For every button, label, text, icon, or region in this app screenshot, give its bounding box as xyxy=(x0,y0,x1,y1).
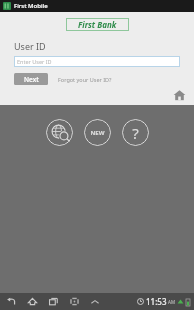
staticText: Enter User ID xyxy=(17,58,52,65)
button[interactable]: First Bank logo xyxy=(66,18,129,31)
button[interactable]: Enter User ID xyxy=(14,56,180,67)
button[interactable]: Screenshot xyxy=(69,296,80,307)
staticText: First Bank xyxy=(78,19,117,30)
button[interactable]: Recents xyxy=(48,296,59,307)
staticText: 11:53 xyxy=(146,296,167,307)
button[interactable]: Find a location xyxy=(46,119,73,146)
staticText: AM xyxy=(168,299,175,305)
staticText: NEW xyxy=(90,129,105,137)
staticText: User ID xyxy=(14,40,46,52)
button[interactable]: Notifications xyxy=(89,296,101,308)
button[interactable]: Home xyxy=(27,296,38,307)
button[interactable]: Forgot your User ID? xyxy=(58,76,112,83)
staticText: ? xyxy=(132,123,139,143)
button[interactable]: Back xyxy=(6,296,17,307)
staticText: Forgot your User ID? xyxy=(58,76,112,83)
staticText: First Mobile xyxy=(14,2,48,10)
button[interactable]: Home xyxy=(173,89,186,102)
staticText: Next xyxy=(24,75,39,84)
button[interactable]: New xyxy=(84,119,111,146)
button[interactable]: Help xyxy=(122,119,149,146)
button[interactable]: Next xyxy=(14,73,48,85)
